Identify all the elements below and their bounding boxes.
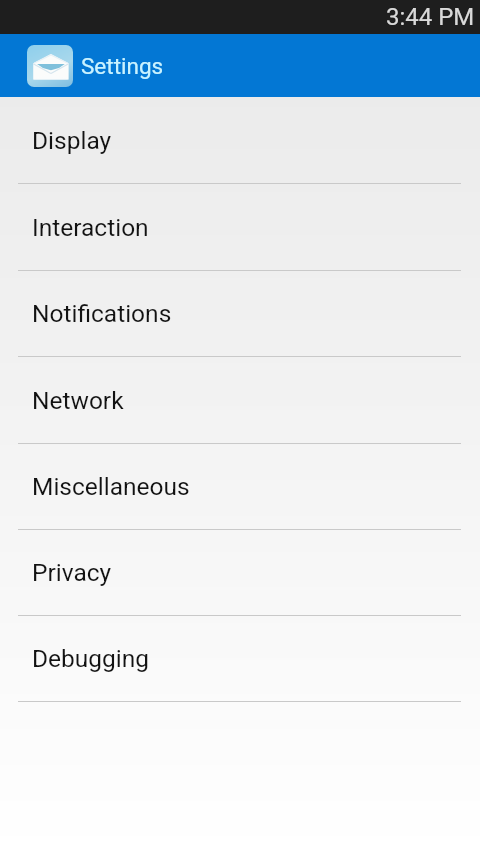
staticText: Debugging	[32, 644, 150, 673]
button[interactable]: Network	[0, 357, 480, 444]
button[interactable]: Miscellaneous	[0, 444, 480, 530]
button[interactable]: Notifications	[0, 271, 480, 357]
button[interactable]: Display	[0, 97, 480, 184]
button[interactable]: Debugging	[0, 616, 480, 702]
staticText: 3:44 PM	[386, 3, 475, 31]
staticText: Privacy	[32, 558, 112, 587]
button[interactable]: Interaction	[0, 184, 480, 271]
staticText: Settings	[81, 53, 164, 79]
staticText: Network	[32, 386, 124, 415]
staticText: Interaction	[32, 213, 149, 242]
staticText: Notifications	[32, 299, 172, 328]
staticText: Display	[32, 126, 112, 155]
button[interactable]: Privacy	[0, 530, 480, 616]
staticText: Miscellaneous	[32, 472, 190, 501]
other: Mail	[27, 45, 73, 87]
